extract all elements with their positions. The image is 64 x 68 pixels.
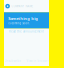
staticText: is coming soon. [8,21,30,25]
staticText: Unsubscribe · View in browser [4,59,48,63]
button[interactable]: Company logo [5,4,10,8]
staticText: Read the announcement [9,30,44,33]
staticText: Something big [8,16,38,21]
staticText: COMPANY NAME [11,4,32,8]
button[interactable]: Read the announcement [9,30,44,33]
button[interactable]: Unsubscribe · View in browser [4,59,48,63]
